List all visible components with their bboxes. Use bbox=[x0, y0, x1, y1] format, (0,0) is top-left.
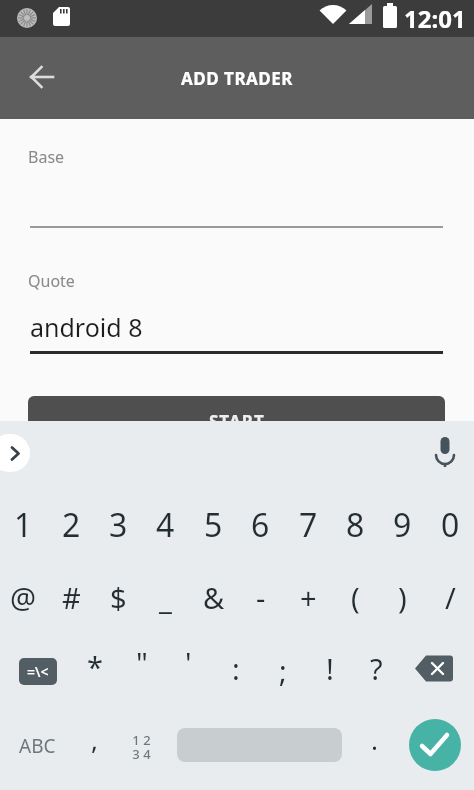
button[interactable]: 4 bbox=[142, 488, 189, 562]
staticText: ) bbox=[398, 578, 407, 617]
staticText: Quote bbox=[28, 270, 75, 292]
button[interactable]: _ bbox=[142, 560, 189, 634]
staticText: ABC bbox=[19, 733, 56, 759]
button[interactable]: ? bbox=[353, 631, 400, 705]
button[interactable]: 9 bbox=[379, 488, 426, 562]
staticText: ? bbox=[370, 649, 383, 688]
staticText: 4 bbox=[156, 503, 175, 547]
staticText: _ bbox=[159, 578, 172, 617]
staticText: + bbox=[300, 578, 317, 617]
staticText: & bbox=[203, 578, 225, 617]
staticText: =\< bbox=[27, 662, 49, 681]
staticText: 2 bbox=[62, 503, 81, 547]
staticText: " bbox=[136, 643, 148, 682]
button[interactable]: & bbox=[190, 560, 237, 634]
button[interactable]: # bbox=[48, 560, 95, 634]
staticText: : bbox=[232, 649, 240, 688]
staticText: 9 bbox=[393, 503, 412, 547]
staticText: Base bbox=[28, 146, 65, 168]
staticText: - bbox=[256, 578, 266, 617]
button[interactable]: / bbox=[427, 560, 474, 634]
button[interactable]: ; bbox=[259, 633, 306, 707]
staticText: 8 bbox=[346, 503, 365, 547]
staticText: 6 bbox=[251, 503, 270, 547]
staticText: 3 bbox=[109, 503, 128, 547]
staticText: / bbox=[445, 578, 456, 617]
button[interactable]: 6 bbox=[237, 488, 284, 562]
button[interactable] bbox=[425, 430, 465, 474]
button[interactable]: 5 bbox=[190, 488, 237, 562]
button[interactable]: " bbox=[118, 625, 165, 699]
button[interactable]: . bbox=[351, 702, 398, 776]
staticText: ADD TRADER bbox=[0, 67, 474, 90]
staticText: 0 bbox=[441, 503, 460, 547]
button[interactable]: : bbox=[212, 631, 259, 705]
button[interactable]: ' bbox=[165, 625, 212, 699]
staticText: ; bbox=[279, 651, 287, 690]
button[interactable]: 2 bbox=[48, 488, 95, 562]
button[interactable]: + bbox=[285, 560, 332, 634]
staticText: 12:01 bbox=[404, 2, 466, 35]
staticText: $ bbox=[110, 578, 127, 617]
button[interactable]: * bbox=[71, 629, 118, 703]
button[interactable]: ! bbox=[306, 631, 353, 705]
button[interactable]: @ bbox=[0, 560, 47, 634]
button[interactable] bbox=[0, 434, 30, 472]
staticText: @ bbox=[10, 578, 37, 617]
button[interactable]: ( bbox=[332, 560, 379, 634]
staticText: * bbox=[87, 647, 103, 686]
button[interactable]: 1 2 3 4 bbox=[120, 726, 162, 768]
staticText: ' bbox=[185, 643, 192, 682]
button[interactable]: =\< bbox=[19, 658, 57, 685]
staticText: START bbox=[209, 410, 265, 433]
staticText: android 8 bbox=[30, 310, 143, 344]
button[interactable]: START bbox=[28, 396, 445, 446]
staticText: 1 bbox=[14, 503, 33, 547]
button[interactable]: ) bbox=[379, 560, 426, 634]
staticText: . bbox=[371, 722, 378, 757]
button[interactable]: 3 bbox=[95, 488, 142, 562]
button[interactable]: 7 bbox=[285, 488, 332, 562]
button[interactable] bbox=[177, 728, 342, 762]
staticText: 1 2 3 4 bbox=[132, 731, 151, 763]
staticText: ( bbox=[351, 578, 360, 617]
button[interactable]: ABC bbox=[14, 709, 61, 783]
staticText: 5 bbox=[204, 503, 223, 547]
staticText: # bbox=[62, 578, 81, 617]
staticText: ! bbox=[326, 649, 334, 688]
staticText: 7 bbox=[299, 503, 318, 547]
button[interactable] bbox=[411, 651, 457, 685]
button[interactable]: 1 bbox=[0, 488, 47, 562]
button[interactable]: 0 bbox=[427, 488, 474, 562]
button[interactable] bbox=[409, 719, 461, 771]
button[interactable]: - bbox=[237, 560, 284, 634]
staticText: , bbox=[91, 722, 98, 757]
button[interactable] bbox=[18, 53, 66, 101]
button[interactable]: 8 bbox=[332, 488, 379, 562]
button[interactable]: $ bbox=[95, 560, 142, 634]
button[interactable]: , bbox=[71, 702, 118, 776]
